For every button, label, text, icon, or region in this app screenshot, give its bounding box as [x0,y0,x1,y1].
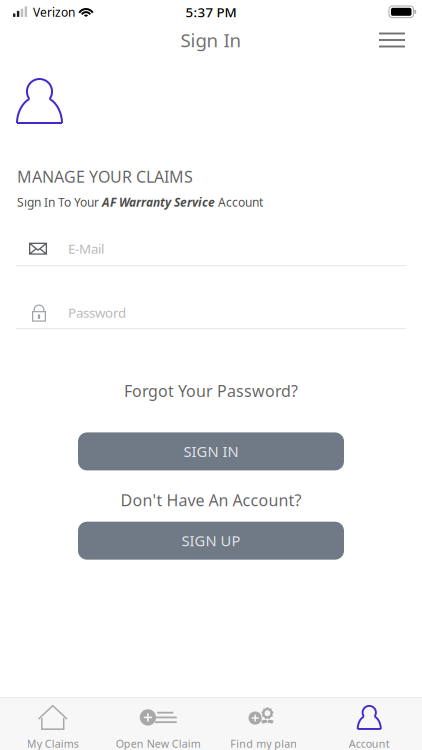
button[interactable]: Menu [370,21,414,58]
staticText: Verizon [33,4,75,20]
button[interactable]: Open New Claim [105,698,211,750]
staticText: 5:37 PM [185,3,236,21]
staticText: Don't Have An Account? [120,489,301,511]
button[interactable]: SIGN IN [78,432,344,470]
staticText: MANAGE YOUR CLAIMS [17,166,193,187]
button[interactable]: Find my plan [211,698,316,750]
staticText: Find my plan [230,736,297,750]
staticText: Sign In [180,28,241,52]
staticText: Sign In To Your AF Warranty Service Acco… [17,194,263,210]
staticText: Forgot Your Password? [124,380,298,401]
staticText: SIGN UP [181,531,240,550]
staticText: Password [68,304,126,321]
button[interactable]: Forgot Your Password? [0,375,422,406]
staticText: Account [349,736,390,750]
staticText: SIGN IN [183,442,238,461]
button[interactable]: Don't Have An Account? [0,484,422,516]
staticText: E-Mail [68,240,104,257]
staticText: Open New Claim [116,736,201,750]
staticText: My Claims [27,736,79,750]
button[interactable]: Account [316,698,422,750]
button[interactable]: SIGN UP [78,522,344,560]
button[interactable]: My Claims [0,698,105,750]
